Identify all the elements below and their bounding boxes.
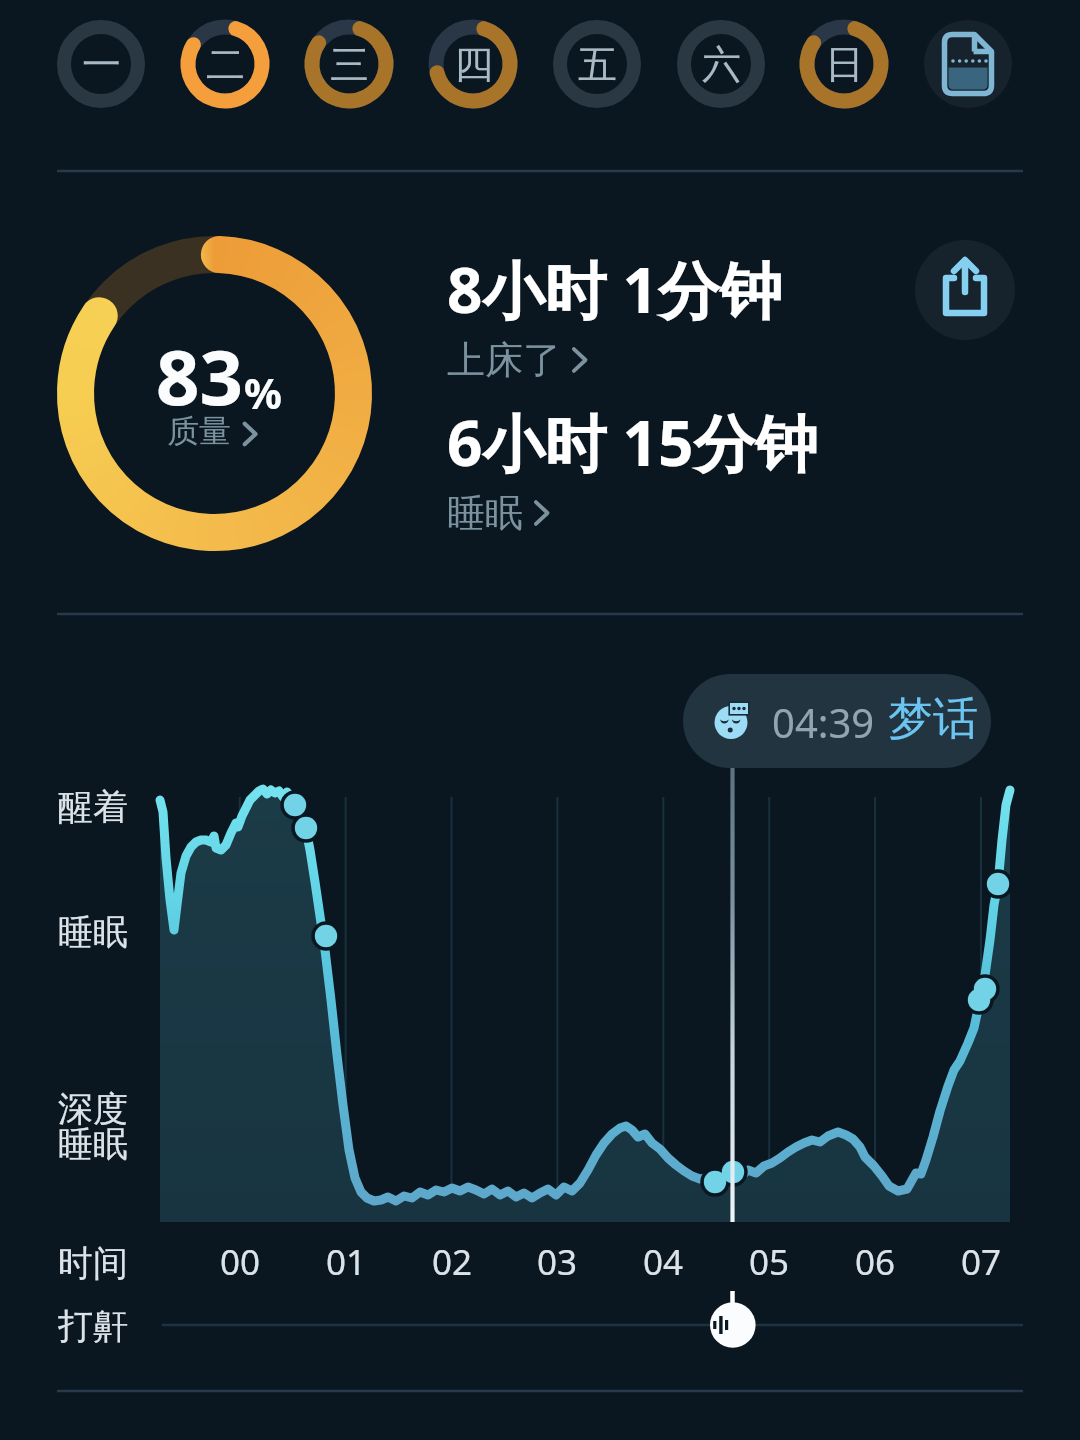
button[interactable]: 四 [429, 20, 517, 108]
button[interactable]: 二 [181, 20, 269, 108]
button[interactable]: 睡眠 [447, 489, 565, 537]
staticText: 03 [537, 1238, 578, 1286]
staticText: 04 [643, 1238, 684, 1286]
button[interactable]: 五 [553, 20, 641, 108]
staticText: 8小时 1分钟 [447, 247, 783, 332]
staticText: 六 [702, 40, 741, 89]
button[interactable]: Share [915, 240, 1015, 340]
button[interactable]: 一 [57, 20, 145, 108]
staticText: 质量 [167, 411, 231, 451]
staticText: 深度 睡眠 [58, 1087, 128, 1167]
staticText: 梦话 [888, 691, 978, 748]
staticText: 00 [220, 1238, 261, 1286]
staticText: 睡眠 [58, 910, 128, 954]
staticText: 83 [156, 324, 243, 428]
staticText: 时间 [58, 1241, 128, 1285]
button[interactable]: 日 [800, 20, 888, 108]
staticText: 打鼾 [58, 1304, 128, 1348]
staticText: 四 [454, 40, 493, 89]
staticText: 02 [432, 1238, 473, 1286]
staticText: 一 [82, 40, 121, 89]
button[interactable]: 04:39 [683, 674, 991, 768]
staticText: 三 [330, 40, 369, 89]
staticText: 05 [749, 1238, 790, 1286]
staticText: 01 [326, 1238, 367, 1286]
button[interactable]: Sleep stage chart [160, 789, 1010, 1222]
staticText: 上床了 [447, 336, 561, 384]
staticText: 6小时 15分钟 [447, 400, 818, 485]
staticText: 五 [578, 40, 617, 89]
button[interactable]: Sleep report [924, 20, 1012, 108]
staticText: % [244, 364, 282, 421]
button[interactable]: Snoring recording at 04:39 [710, 1302, 756, 1348]
staticText: 二 [206, 40, 245, 89]
staticText: 04:39 [772, 695, 875, 749]
button[interactable]: 上床了 [447, 336, 603, 384]
staticText: 睡眠 [447, 489, 523, 537]
staticText: 醒着 [58, 785, 128, 829]
staticText: 07 [961, 1238, 1002, 1286]
staticText: 日 [825, 40, 864, 89]
button[interactable]: 质量 [167, 411, 265, 451]
button[interactable]: 三 [305, 20, 393, 108]
staticText: 06 [855, 1238, 896, 1286]
button[interactable]: 六 [677, 20, 765, 108]
